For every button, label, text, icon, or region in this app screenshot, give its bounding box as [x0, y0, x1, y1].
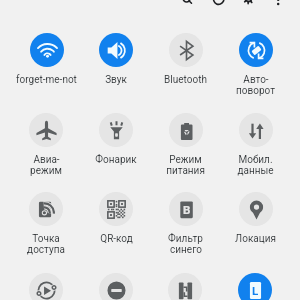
button[interactable]: Search [176, 0, 198, 14]
button[interactable] [82, 273, 150, 300]
button[interactable]: Bluetooth [151, 33, 219, 85]
staticText: forget-me-not [16, 74, 77, 85]
button[interactable]: Звук [82, 33, 150, 85]
button[interactable]: More options [267, 0, 289, 14]
button[interactable]: Режим [151, 113, 219, 176]
button[interactable]: Settings [238, 0, 260, 14]
button[interactable]: Авиа- [12, 113, 80, 176]
staticText: данные [237, 165, 274, 176]
button[interactable]: Локация [221, 192, 289, 244]
staticText: Фильтр [168, 233, 203, 244]
staticText: Локация [235, 233, 276, 244]
staticText: Мобил. [238, 154, 273, 165]
staticText: Авиа- [33, 154, 60, 165]
button[interactable]: Авто- [221, 33, 289, 96]
staticText: Bluetooth [164, 74, 207, 85]
button[interactable] [151, 273, 219, 300]
staticText: Звук [105, 74, 127, 85]
staticText: Фонарик [95, 154, 137, 165]
button[interactable]: Точка [12, 192, 80, 255]
staticText: синего [170, 244, 202, 255]
button[interactable]: Restart [208, 0, 230, 14]
button[interactable] [12, 273, 80, 300]
button[interactable]: QR-код [82, 192, 150, 244]
staticText: L [252, 284, 259, 297]
button[interactable]: forget-me-not [12, 33, 80, 85]
staticText: Режим [169, 154, 202, 165]
button[interactable]: Мобил. [221, 113, 289, 176]
staticText: B [183, 203, 191, 216]
staticText: режим [30, 165, 62, 176]
button[interactable]: Фонарик [82, 113, 150, 165]
staticText: питания [166, 165, 205, 176]
staticText: доступа [27, 244, 65, 255]
button[interactable]: L [221, 273, 289, 300]
staticText: Точка [32, 233, 60, 244]
staticText: Авто- [243, 74, 269, 85]
button[interactable]: B [151, 192, 219, 255]
staticText: QR-код [100, 233, 133, 244]
staticText: поворот [236, 85, 275, 96]
